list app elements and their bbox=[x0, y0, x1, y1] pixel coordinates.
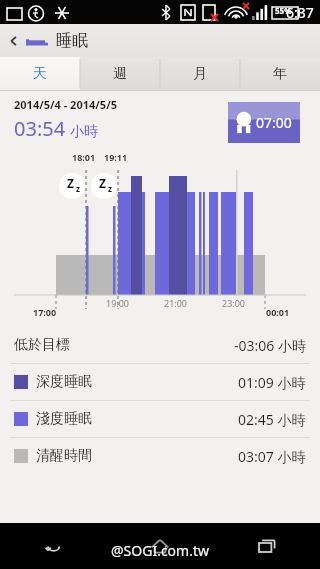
button[interactable]: Back bbox=[0, 24, 320, 57]
staticText: 55% bbox=[275, 5, 292, 16]
staticText: 17:00 bbox=[33, 306, 57, 318]
staticText: -03:06 小時 bbox=[234, 336, 306, 355]
staticText: Z bbox=[67, 175, 74, 191]
staticText: z bbox=[108, 183, 112, 194]
staticText: 21:00 bbox=[164, 297, 188, 309]
staticText: 6:37 bbox=[286, 3, 314, 22]
button[interactable]: 低於目標 bbox=[0, 327, 320, 363]
staticText: 低於目標 bbox=[14, 336, 70, 354]
staticText: 月 bbox=[193, 65, 207, 83]
button[interactable]: Home bbox=[106, 523, 213, 569]
button[interactable]: 年 bbox=[240, 57, 320, 90]
staticText: @SOGI.com.tw bbox=[111, 541, 209, 560]
button[interactable]: Alarm 07:00 bbox=[228, 102, 300, 143]
staticText: 19:00 bbox=[106, 297, 130, 309]
staticText: 19:11 bbox=[104, 151, 128, 163]
staticText: z bbox=[76, 183, 80, 194]
button[interactable]: 月 bbox=[160, 57, 240, 90]
staticText: 02:45 小時 bbox=[238, 410, 306, 429]
staticText: 2014/5/4 - 2014/5/5 bbox=[14, 97, 118, 112]
staticText: Z bbox=[99, 175, 106, 191]
staticText: 天 bbox=[33, 65, 47, 83]
staticText: 睡眠 bbox=[56, 31, 88, 51]
button[interactable]: 清醒時間 bbox=[0, 438, 320, 474]
button[interactable]: Recent apps bbox=[213, 523, 320, 569]
staticText: 清醒時間 bbox=[36, 447, 92, 465]
staticText: 深度睡眠 bbox=[36, 373, 92, 391]
staticText: 01:09 小時 bbox=[238, 373, 306, 392]
staticText: 03:54 bbox=[14, 115, 66, 142]
button[interactable]: 週 bbox=[80, 57, 160, 90]
staticText: 年 bbox=[273, 65, 287, 83]
staticText: 18:01 bbox=[72, 151, 96, 163]
button[interactable]: 淺度睡眠 bbox=[0, 401, 320, 437]
button[interactable]: 深度睡眠 bbox=[0, 364, 320, 400]
staticText: 23:00 bbox=[222, 297, 246, 309]
staticText: 週 bbox=[113, 65, 127, 83]
staticText: 07:00 bbox=[256, 113, 292, 132]
button[interactable]: 天 bbox=[0, 57, 80, 90]
staticText: 淺度睡眠 bbox=[36, 410, 92, 428]
staticText: 00:01 bbox=[266, 306, 290, 318]
staticText: 小時 bbox=[70, 123, 98, 141]
staticText: 03:07 小時 bbox=[238, 447, 306, 466]
button[interactable]: Back bbox=[0, 523, 106, 569]
